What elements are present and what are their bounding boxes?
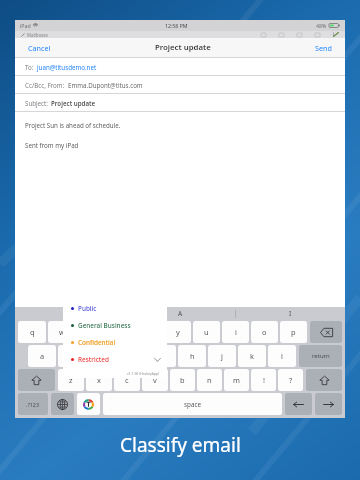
staticText: Restricted: [78, 355, 109, 364]
staticText: p: [291, 327, 296, 337]
staticText: Project Sun is ahead of schedule.: [25, 121, 121, 129]
staticText: Cc/Bcc, From:: [25, 81, 65, 89]
staticText: 48%: [316, 22, 327, 29]
staticText: q: [30, 327, 35, 337]
staticText: Sent from my iPad: [25, 141, 79, 149]
button[interactable]: l: [268, 345, 296, 367]
staticText: y: [176, 327, 180, 337]
staticText: d: [100, 351, 105, 361]
button[interactable]: w: [48, 321, 75, 343]
button[interactable]: g: [148, 345, 176, 367]
staticText: General Business: [78, 321, 131, 330]
staticText: r: [118, 327, 122, 337]
staticText: n: [207, 375, 212, 385]
button[interactable]: y: [164, 321, 191, 343]
button[interactable]: u: [193, 321, 220, 343]
staticText: c: [125, 375, 129, 385]
button[interactable]: j: [208, 345, 236, 367]
button[interactable]: h: [178, 345, 206, 367]
button[interactable]: Previous: [285, 393, 312, 415]
button[interactable]: Shift: [306, 369, 342, 391]
button[interactable]: return: [299, 345, 342, 367]
staticText: Mailboxes: [27, 32, 48, 38]
button[interactable]: [15, 307, 125, 320]
button[interactable]: ?: [278, 369, 303, 391]
staticText: iPad: [20, 22, 31, 29]
staticText: juan@titusdemo.net: [37, 63, 97, 71]
button[interactable]: Public: [63, 300, 167, 317]
button[interactable]: p: [280, 321, 307, 343]
button[interactable]: Classify email: [77, 393, 100, 415]
button[interactable]: k: [238, 345, 266, 367]
staticText: return: [312, 352, 330, 360]
button[interactable]: General Business: [63, 317, 167, 334]
button[interactable]: c: [114, 369, 140, 391]
button[interactable]: s: [58, 345, 86, 367]
staticText: Emma.Dupont@titus.com: [68, 81, 143, 89]
staticText: l: [281, 351, 283, 361]
staticText: v: [153, 375, 157, 385]
staticText: ?: [289, 375, 293, 385]
staticText: z: [69, 375, 73, 385]
staticText: a: [40, 351, 45, 361]
staticText: Send: [315, 43, 332, 53]
button[interactable]: m: [224, 369, 249, 391]
staticText: space: [184, 400, 201, 409]
staticText: Cancel: [28, 43, 51, 53]
staticText: k: [250, 351, 254, 361]
staticText: I: [289, 309, 292, 318]
staticText: s: [70, 351, 74, 361]
staticText: !: [263, 375, 265, 385]
button[interactable]: z: [58, 369, 84, 391]
button[interactable]: b: [170, 369, 195, 391]
button[interactable]: Cc/Bcc, From:: [15, 76, 345, 93]
button[interactable]: e: [77, 321, 104, 343]
staticText: Public: [78, 304, 97, 313]
button[interactable]: Confidential: [63, 334, 167, 351]
button[interactable]: Cancel: [26, 41, 53, 55]
staticText: e: [88, 327, 93, 337]
button[interactable]: r: [106, 321, 133, 343]
staticText: Confidential: [78, 338, 116, 347]
button[interactable]: To:: [15, 58, 345, 75]
staticText: w: [59, 327, 65, 337]
staticText: m: [233, 375, 240, 385]
button[interactable]: q: [18, 321, 46, 343]
staticText: Classify email: [120, 432, 241, 458]
staticText: i: [235, 327, 237, 337]
staticText: b: [180, 375, 185, 385]
staticText: A: [178, 309, 183, 318]
button[interactable]: v: [142, 369, 168, 391]
button[interactable]: I: [236, 307, 345, 320]
button[interactable]: A: [126, 307, 235, 320]
staticText: j: [221, 351, 223, 361]
button[interactable]: n: [197, 369, 222, 391]
staticText: o: [262, 327, 267, 337]
button[interactable]: Shift: [18, 369, 55, 391]
staticText: v1.1.96 (HockeyApp): [127, 371, 160, 376]
staticText: To:: [25, 63, 34, 71]
button[interactable]: Next: [315, 393, 342, 415]
button[interactable]: a: [28, 345, 56, 367]
button[interactable]: Send: [313, 41, 334, 55]
button[interactable]: d: [88, 345, 116, 367]
staticText: x: [97, 375, 101, 385]
button[interactable]: x: [86, 369, 112, 391]
button[interactable]: Switch keyboard: [51, 393, 74, 415]
button[interactable]: !: [251, 369, 276, 391]
staticText: u: [204, 327, 209, 337]
staticText: Subject:: [25, 99, 48, 107]
button[interactable]: .?123: [18, 393, 48, 415]
button[interactable]: Restricted: [63, 351, 167, 368]
button[interactable]: Backspace: [310, 321, 342, 343]
button[interactable]: space: [103, 393, 282, 415]
button[interactable]: Subject:: [15, 94, 345, 111]
staticText: h: [190, 351, 195, 361]
staticText: .?123: [26, 401, 40, 408]
staticText: g: [160, 351, 165, 361]
button[interactable]: o: [251, 321, 278, 343]
button[interactable]: i: [222, 321, 249, 343]
